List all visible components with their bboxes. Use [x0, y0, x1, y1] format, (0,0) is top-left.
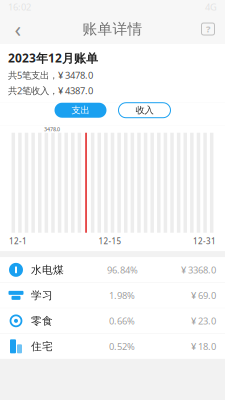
staticText: 1.98%: [109, 289, 135, 301]
staticText: 0.66%: [109, 315, 135, 327]
staticText: ‹: [14, 15, 21, 43]
button[interactable]: 学习: [0, 283, 225, 308]
staticText: 16:02: [8, 1, 31, 13]
staticText: 12-31: [193, 236, 216, 246]
button[interactable]: 收入: [118, 103, 170, 118]
staticText: 住宅: [31, 340, 53, 353]
staticText: 共5笔支出，¥ 3478.0: [8, 69, 93, 81]
staticText: 水电煤: [31, 263, 64, 276]
button[interactable]: Back: [4, 15, 32, 43]
staticText: ?: [206, 23, 210, 35]
staticText: ¥ 18.0: [191, 340, 216, 352]
button[interactable]: 零食: [0, 308, 225, 333]
button[interactable]: 支出: [54, 103, 106, 118]
staticText: 账单详情: [82, 20, 142, 38]
staticText: 2023年12月账单: [8, 50, 98, 66]
staticText: ¥ 23.0: [191, 315, 216, 327]
staticText: 零食: [31, 314, 53, 327]
staticText: 支出: [71, 104, 89, 116]
staticText: 共2笔收入，¥ 4387.0: [8, 84, 93, 97]
button[interactable]: 住宅: [0, 334, 225, 359]
staticText: ¥ 3368.0: [181, 264, 216, 276]
staticText: 学习: [31, 289, 53, 302]
button[interactable]: 水电煤: [0, 257, 225, 282]
staticText: 3478.0: [44, 126, 60, 133]
staticText: 4G: [205, 1, 217, 13]
staticText: 12-15: [98, 236, 121, 246]
staticText: 12-1: [9, 236, 27, 246]
staticText: 96.84%: [107, 264, 138, 276]
staticText: ¥ 69.0: [191, 289, 216, 301]
button[interactable]: Help: [195, 16, 221, 42]
staticText: 收入: [135, 104, 153, 116]
staticText: 0.52%: [109, 340, 135, 352]
